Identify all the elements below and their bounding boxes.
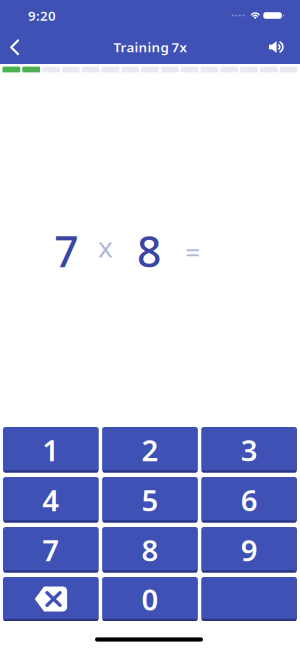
staticText: 6 (241, 480, 258, 519)
button[interactable]: 0 (102, 577, 198, 621)
button[interactable]: 6 (201, 477, 297, 522)
staticText: 5 (141, 480, 158, 519)
staticText: 9:20 (28, 7, 56, 24)
staticText: 1 (42, 430, 59, 469)
staticText: 9 (241, 530, 258, 569)
button[interactable]: 5 (102, 477, 198, 522)
staticText: 7 (54, 222, 78, 279)
staticText: = (185, 234, 200, 270)
button[interactable] (269, 39, 300, 52)
button[interactable]: 8 (102, 527, 198, 572)
button[interactable]: 4 (3, 477, 99, 522)
button[interactable]: 1 (3, 427, 99, 472)
button[interactable]: 9 (201, 527, 297, 572)
button[interactable] (3, 577, 99, 621)
button[interactable] (201, 577, 297, 621)
staticText: x (98, 228, 113, 265)
button[interactable] (0, 38, 20, 54)
staticText: 8 (141, 530, 158, 569)
button[interactable]: 2 (102, 427, 198, 472)
staticText: 2 (141, 430, 158, 469)
staticText: 3 (241, 430, 258, 469)
staticText: 4 (42, 480, 59, 519)
button[interactable]: 7 (3, 527, 99, 572)
staticText: 8 (137, 222, 161, 279)
staticText: 0 (141, 579, 158, 618)
button[interactable]: 3 (201, 427, 297, 472)
staticText: Training 7x (113, 38, 186, 56)
staticText: 7 (42, 530, 59, 569)
